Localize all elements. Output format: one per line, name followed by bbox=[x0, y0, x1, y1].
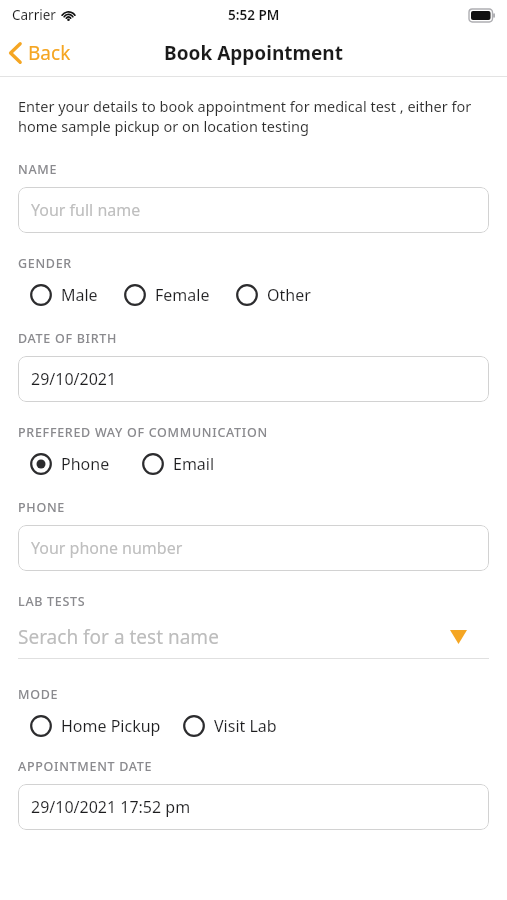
staticText: Email bbox=[173, 453, 215, 475]
staticText: MODE bbox=[18, 686, 59, 703]
button[interactable]: Other bbox=[236, 282, 311, 308]
staticText: PHONE bbox=[18, 499, 65, 516]
staticText: NAME bbox=[18, 161, 58, 178]
staticText: 5:52 PM bbox=[228, 6, 280, 24]
staticText: Visit Lab bbox=[214, 715, 277, 737]
staticText: DATE OF BIRTH bbox=[18, 330, 118, 347]
staticText: GENDER bbox=[18, 255, 72, 272]
staticText: Male bbox=[61, 284, 98, 306]
staticText: Carrier bbox=[12, 6, 56, 24]
staticText: Phone bbox=[61, 453, 110, 475]
staticText: LAB TESTS bbox=[18, 593, 86, 610]
button[interactable]: Email bbox=[142, 451, 215, 477]
staticText: Other bbox=[267, 284, 311, 306]
button[interactable]: Female bbox=[124, 282, 210, 308]
staticText: Your phone number bbox=[31, 537, 183, 559]
button[interactable]: Your phone number bbox=[18, 525, 489, 571]
staticText: 29/10/2021 17:52 pm bbox=[31, 796, 191, 818]
button[interactable]: Your full name bbox=[18, 187, 489, 233]
staticText: Serach for a test name bbox=[18, 624, 219, 650]
staticText: Your full name bbox=[31, 199, 141, 221]
button[interactable]: 29/10/2021 17:52 pm bbox=[18, 784, 489, 830]
button[interactable]: Home Pickup bbox=[30, 713, 161, 739]
button[interactable]: Visit Lab bbox=[183, 713, 277, 739]
staticText: 29/10/2021 bbox=[31, 368, 117, 390]
button[interactable]: Phone bbox=[30, 451, 110, 477]
staticText: Home Pickup bbox=[61, 715, 161, 737]
staticText: Back bbox=[28, 40, 71, 66]
staticText: Book Appointment bbox=[164, 40, 343, 66]
button[interactable]: Search for a test name, open list bbox=[18, 616, 489, 658]
staticText: Female bbox=[155, 284, 210, 306]
button[interactable]: Back bbox=[0, 36, 81, 70]
button[interactable]: Male bbox=[30, 282, 98, 308]
staticText: PREFFERED WAY OF COMMUNICATION bbox=[18, 424, 268, 441]
staticText: APPOINTMENT DATE bbox=[18, 758, 153, 775]
button[interactable]: 29/10/2021 bbox=[18, 356, 489, 402]
staticText: Enter your details to book appointment f… bbox=[18, 96, 489, 136]
